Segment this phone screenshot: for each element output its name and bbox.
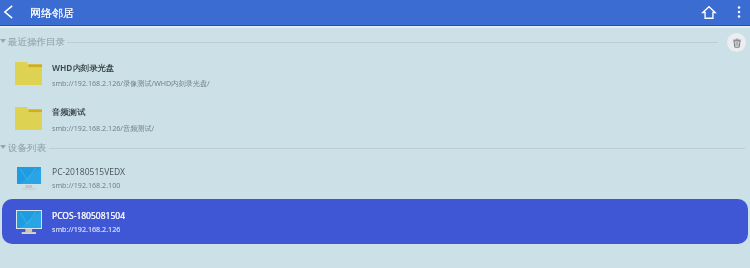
staticText: smb://192.168.2.126/录像测试/WHD内刻录光盘/	[52, 78, 210, 88]
button[interactable]: Home	[697, 0, 721, 24]
button[interactable]: 音频测试	[0, 97, 750, 141]
staticText: smb://192.168.2.126/音频测试/	[52, 123, 155, 133]
button[interactable]: PCOS-1805081504	[2, 199, 748, 244]
button[interactable]: Back	[0, 0, 20, 23]
staticText: 设备列表	[8, 142, 46, 154]
staticText: WHD内刻录光盘	[52, 62, 114, 73]
staticText: 最近操作目录	[8, 36, 65, 48]
button[interactable]: Delete	[727, 33, 746, 52]
staticText: 音频测试	[52, 107, 86, 117]
button[interactable]: More options	[727, 0, 750, 24]
staticText: 网络邻居	[30, 6, 74, 20]
staticText: smb://192.168.2.100	[52, 180, 121, 190]
staticText: PC-20180515VEDX	[52, 166, 125, 178]
staticText: PCOS-1805081504	[52, 210, 126, 222]
button[interactable]: WHD内刻录光盘	[0, 52, 750, 96]
staticText: smb://192.168.2.126	[52, 224, 121, 234]
button[interactable]: PC-20180515VEDX	[2, 155, 748, 200]
